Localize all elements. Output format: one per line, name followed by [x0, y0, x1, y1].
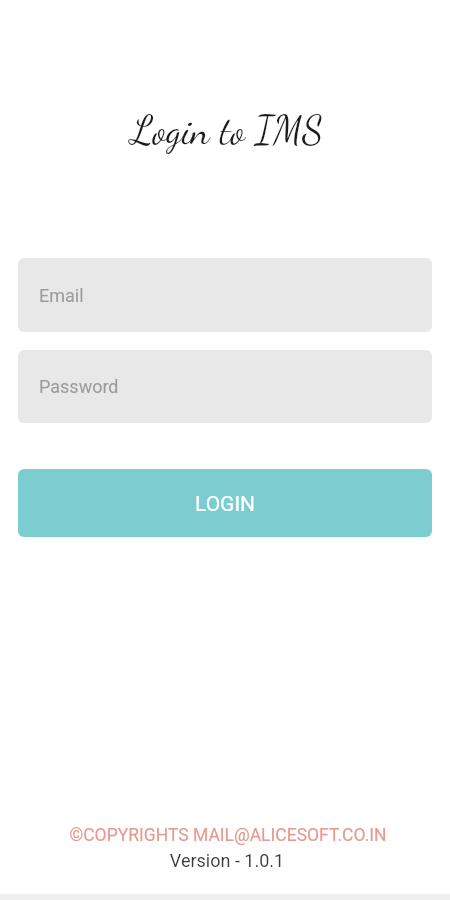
staticText: LOGIN — [195, 492, 256, 517]
staticText: Login to IMS — [2, 107, 450, 154]
button[interactable]: LOGIN — [18, 469, 432, 537]
button[interactable]: ©COPYRIGHTS MAIL@ALICESOFT.CO.IN — [3, 825, 450, 846]
staticText: Version - 1.0.1 — [2, 850, 450, 871]
staticText: Password — [39, 376, 119, 397]
staticText: Email — [39, 285, 84, 306]
button[interactable]: Password — [18, 350, 432, 423]
button[interactable]: Email — [18, 258, 432, 332]
